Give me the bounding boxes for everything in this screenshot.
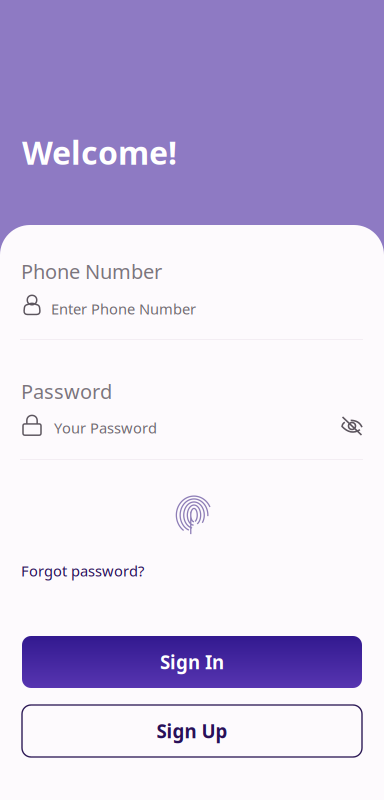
button[interactable]: Sign in with fingerprint <box>170 492 218 542</box>
button[interactable]: Forgot password? <box>21 561 144 580</box>
button[interactable]: Sign Up <box>22 705 362 757</box>
staticText: Enter Phone Number <box>51 299 196 318</box>
staticText: Your Password <box>54 418 157 437</box>
staticText: Sign In <box>160 650 224 674</box>
staticText: Phone Number <box>21 258 162 285</box>
staticText: Password <box>21 378 112 405</box>
button[interactable]: Show password <box>332 406 372 446</box>
staticText: Welcome! <box>22 131 177 173</box>
staticText: Forgot password? <box>21 561 144 580</box>
button[interactable]: Sign In <box>22 636 362 688</box>
staticText: Sign Up <box>156 719 227 743</box>
